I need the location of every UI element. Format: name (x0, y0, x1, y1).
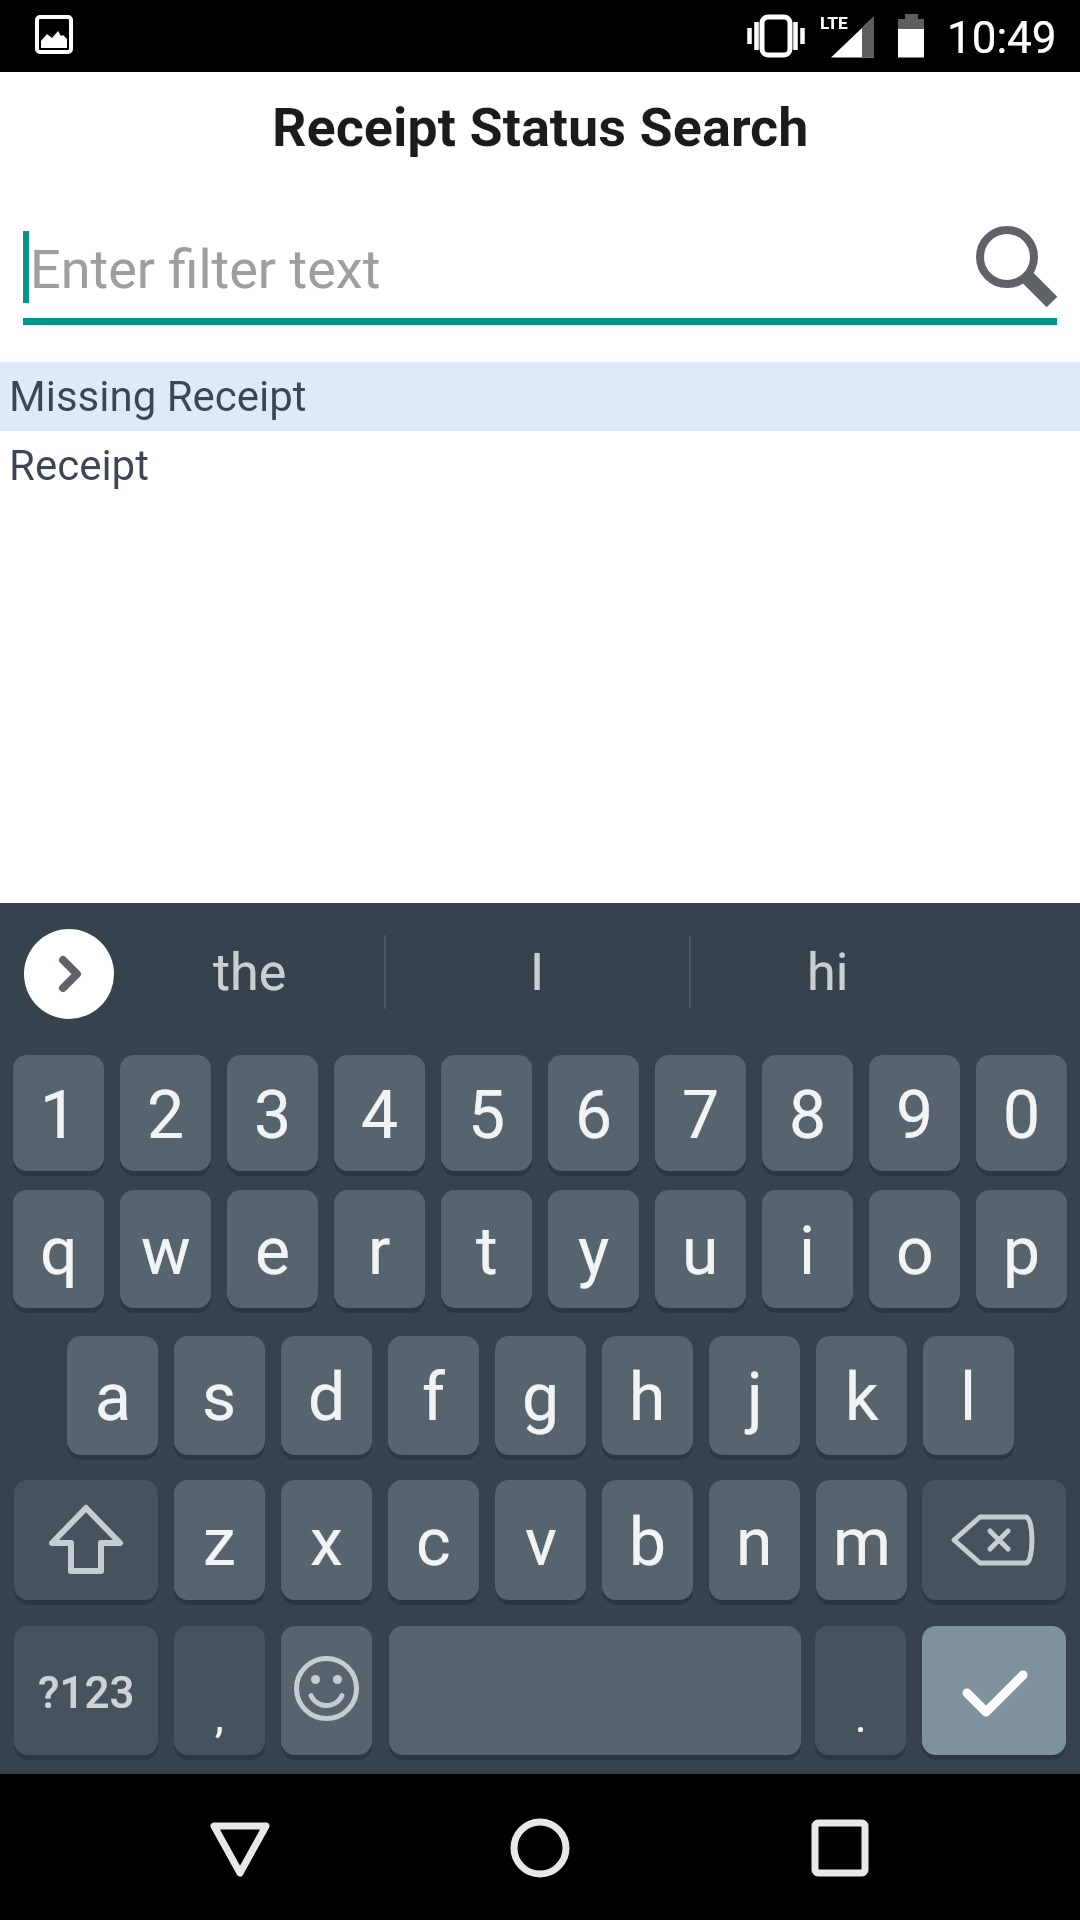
staticText: m (833, 1504, 891, 1581)
button[interactable]: d (281, 1336, 372, 1455)
button[interactable]: 2 (120, 1055, 211, 1171)
staticText: q (40, 1213, 78, 1290)
button[interactable] (922, 1480, 1066, 1600)
button[interactable]: , (174, 1626, 265, 1755)
button[interactable]: s (174, 1336, 265, 1455)
staticText: Receipt (9, 441, 149, 490)
button[interactable]: 0 (976, 1055, 1067, 1171)
button[interactable]: y (548, 1190, 639, 1308)
staticText: LTE (820, 13, 848, 33)
button[interactable]: b (602, 1480, 693, 1600)
staticText: b (629, 1504, 667, 1581)
staticText: j (747, 1359, 763, 1436)
staticText: a (95, 1359, 131, 1436)
button[interactable] (970, 220, 1060, 310)
staticText: 8 (789, 1077, 827, 1154)
button[interactable]: q (13, 1190, 104, 1308)
staticText: y (578, 1213, 610, 1290)
staticText: u (682, 1213, 719, 1290)
button[interactable]: k (816, 1336, 907, 1455)
staticText: hi (807, 942, 849, 1003)
button[interactable]: n (709, 1480, 800, 1600)
staticText: Enter filter text (30, 238, 381, 301)
staticText: 6 (575, 1077, 613, 1154)
button[interactable]: the (115, 923, 385, 1021)
staticText: z (203, 1504, 236, 1581)
staticText: Receipt Status Search (272, 96, 809, 159)
button[interactable]: 6 (548, 1055, 639, 1171)
button[interactable] (23, 212, 963, 324)
staticText: r (368, 1213, 391, 1290)
staticText: p (1003, 1213, 1041, 1290)
staticText: 2 (147, 1077, 185, 1154)
button[interactable]: i (762, 1190, 853, 1308)
button[interactable]: 4 (334, 1055, 425, 1171)
button[interactable]: 1 (13, 1055, 104, 1171)
staticText: t (476, 1213, 498, 1290)
button[interactable]: j (709, 1336, 800, 1455)
staticText: g (522, 1359, 560, 1436)
button[interactable] (185, 1793, 295, 1903)
staticText: e (255, 1213, 290, 1290)
button[interactable]: u (655, 1190, 746, 1308)
button[interactable]: m (816, 1480, 907, 1600)
staticText: k (845, 1359, 879, 1436)
button[interactable]: ?123 (14, 1626, 158, 1755)
button[interactable]: l (923, 1336, 1014, 1455)
staticText: w (141, 1213, 191, 1290)
button[interactable] (14, 1480, 158, 1600)
button[interactable]: I (385, 923, 690, 1021)
button[interactable]: 9 (869, 1055, 960, 1171)
button[interactable] (785, 1793, 895, 1903)
button[interactable]: a (67, 1336, 158, 1455)
button[interactable]: hi (690, 923, 966, 1021)
button[interactable] (24, 929, 114, 1019)
button[interactable]: t (441, 1190, 532, 1308)
staticText: 5 (468, 1077, 506, 1154)
staticText: x (310, 1504, 343, 1581)
button[interactable]: z (174, 1480, 265, 1600)
button[interactable]: f (388, 1336, 479, 1455)
button[interactable]: g (495, 1336, 586, 1455)
button[interactable]: 5 (441, 1055, 532, 1171)
staticText: 0 (1003, 1077, 1041, 1154)
staticText: f (422, 1359, 445, 1436)
button[interactable]: w (120, 1190, 211, 1308)
button[interactable] (485, 1793, 595, 1903)
staticText: I (530, 942, 545, 1003)
staticText: the (213, 942, 287, 1003)
staticText: o (896, 1213, 934, 1290)
button[interactable] (922, 1626, 1066, 1755)
staticText: ?123 (38, 1667, 135, 1719)
staticText: Missing Receipt (9, 372, 307, 421)
button[interactable]: 3 (227, 1055, 318, 1171)
button[interactable]: o (869, 1190, 960, 1308)
button[interactable] (281, 1626, 372, 1755)
button[interactable]: h (602, 1336, 693, 1455)
staticText: c (416, 1504, 451, 1581)
button[interactable]: Missing Receipt (0, 362, 1080, 431)
staticText: 1 (40, 1077, 78, 1154)
button[interactable]: 8 (762, 1055, 853, 1171)
button[interactable]: 7 (655, 1055, 746, 1171)
staticText: 3 (254, 1077, 292, 1154)
staticText: 9 (896, 1077, 934, 1154)
staticText: 7 (682, 1077, 720, 1154)
button[interactable]: r (334, 1190, 425, 1308)
staticText: s (202, 1359, 237, 1436)
button[interactable]: Receipt (0, 431, 1080, 500)
button[interactable]: v (495, 1480, 586, 1600)
button[interactable]: c (388, 1480, 479, 1600)
button[interactable]: x (281, 1480, 372, 1600)
staticText: l (960, 1359, 977, 1436)
staticText: h (629, 1359, 666, 1436)
staticText: 4 (361, 1077, 399, 1154)
staticText: n (736, 1504, 773, 1581)
button[interactable]: e (227, 1190, 318, 1308)
button[interactable]: . (815, 1626, 906, 1755)
button[interactable]: p (976, 1190, 1067, 1308)
staticText: v (525, 1504, 557, 1581)
staticText: , (215, 1691, 224, 1743)
